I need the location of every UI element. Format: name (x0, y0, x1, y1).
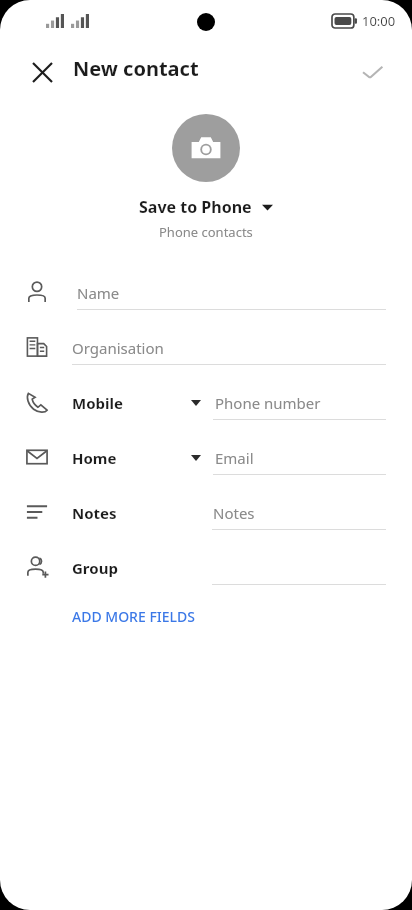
staticText: Email (215, 448, 254, 468)
staticText: Phone contacts (159, 223, 253, 241)
button[interactable] (0, 488, 412, 543)
button[interactable] (0, 543, 412, 598)
staticText: Notes (72, 503, 117, 523)
button[interactable] (0, 433, 412, 488)
button[interactable]: Save (352, 52, 392, 92)
staticText: Organisation (72, 338, 164, 358)
staticText: 10:00 (362, 12, 396, 30)
button[interactable]: ADD MORE FIELDS (58, 598, 209, 634)
staticText: ADD MORE FIELDS (72, 607, 195, 626)
button[interactable] (0, 323, 412, 378)
staticText: Home (72, 448, 117, 468)
staticText: Group (72, 558, 118, 578)
staticText: Notes (213, 503, 255, 523)
button[interactable]: Save to Phone (0, 196, 412, 241)
staticText: Phone number (215, 393, 321, 413)
button[interactable] (0, 268, 412, 323)
staticText: Save to Phone (139, 196, 252, 218)
staticText: New contact (73, 55, 199, 82)
staticText: Name (77, 283, 120, 303)
button[interactable]: Add photo (172, 114, 240, 182)
staticText: Mobile (72, 393, 123, 413)
button[interactable]: Close (22, 52, 62, 92)
button[interactable] (0, 378, 412, 433)
